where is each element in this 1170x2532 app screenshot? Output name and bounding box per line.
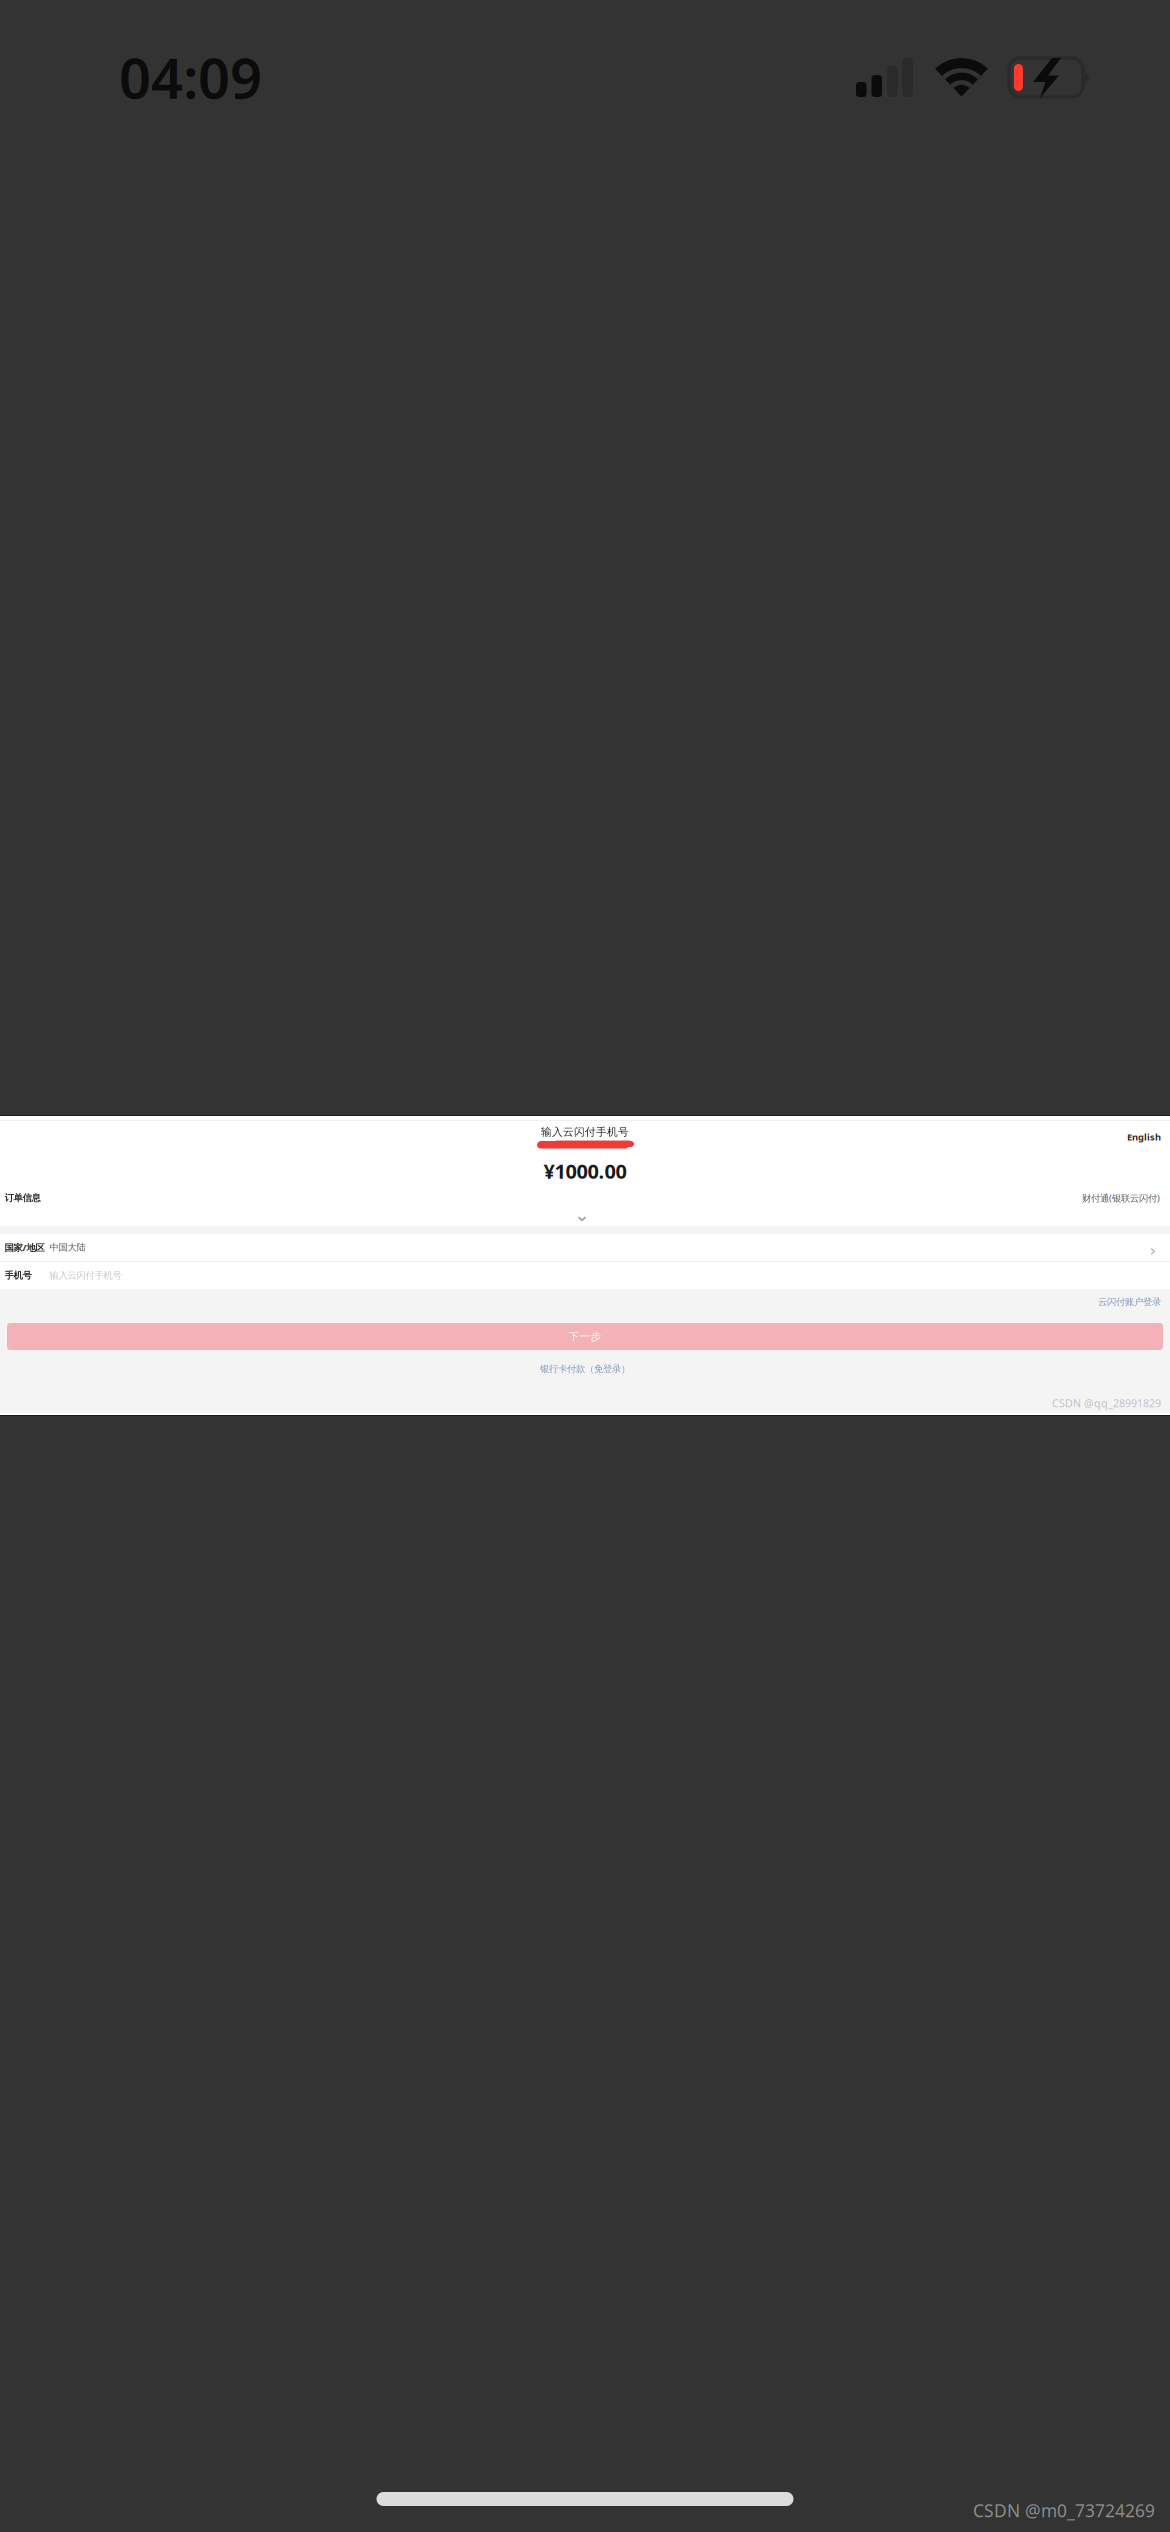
staticText: 国家/地区	[4, 1241, 44, 1254]
button[interactable]: English	[1127, 1130, 1170, 1144]
staticText: 云闪付账户登录	[1098, 1296, 1161, 1308]
staticText: 手机号	[4, 1270, 31, 1281]
staticText: English	[1127, 1131, 1161, 1143]
staticText: CSDN @m0_73724269	[973, 2499, 1155, 2522]
staticText: 银行卡付款（免登录）	[540, 1363, 630, 1375]
staticText: CSDN @qq_28991829	[1052, 1396, 1161, 1410]
staticText: 财付通(银联云闪付)	[1082, 1192, 1160, 1204]
staticText: 输入云闪付手机号	[541, 1125, 629, 1138]
button[interactable]: 云闪付账户登录	[1098, 1296, 1170, 1308]
staticText: 输入云闪付手机号	[49, 1270, 121, 1281]
staticText: 中国大陆	[49, 1242, 85, 1253]
button[interactable]: 展开订单信息	[0, 1216, 1164, 1222]
button[interactable]: 手机号	[0, 1262, 1170, 1289]
staticText: 下一步	[568, 1330, 601, 1343]
button[interactable]: 国家/地区	[0, 1234, 1170, 1261]
staticText: ¥1000.00	[543, 1158, 626, 1184]
staticText: 04:09	[119, 40, 262, 114]
button[interactable]: 银行卡付款（免登录）	[0, 1363, 1170, 1375]
staticText: 订单信息	[4, 1192, 40, 1204]
